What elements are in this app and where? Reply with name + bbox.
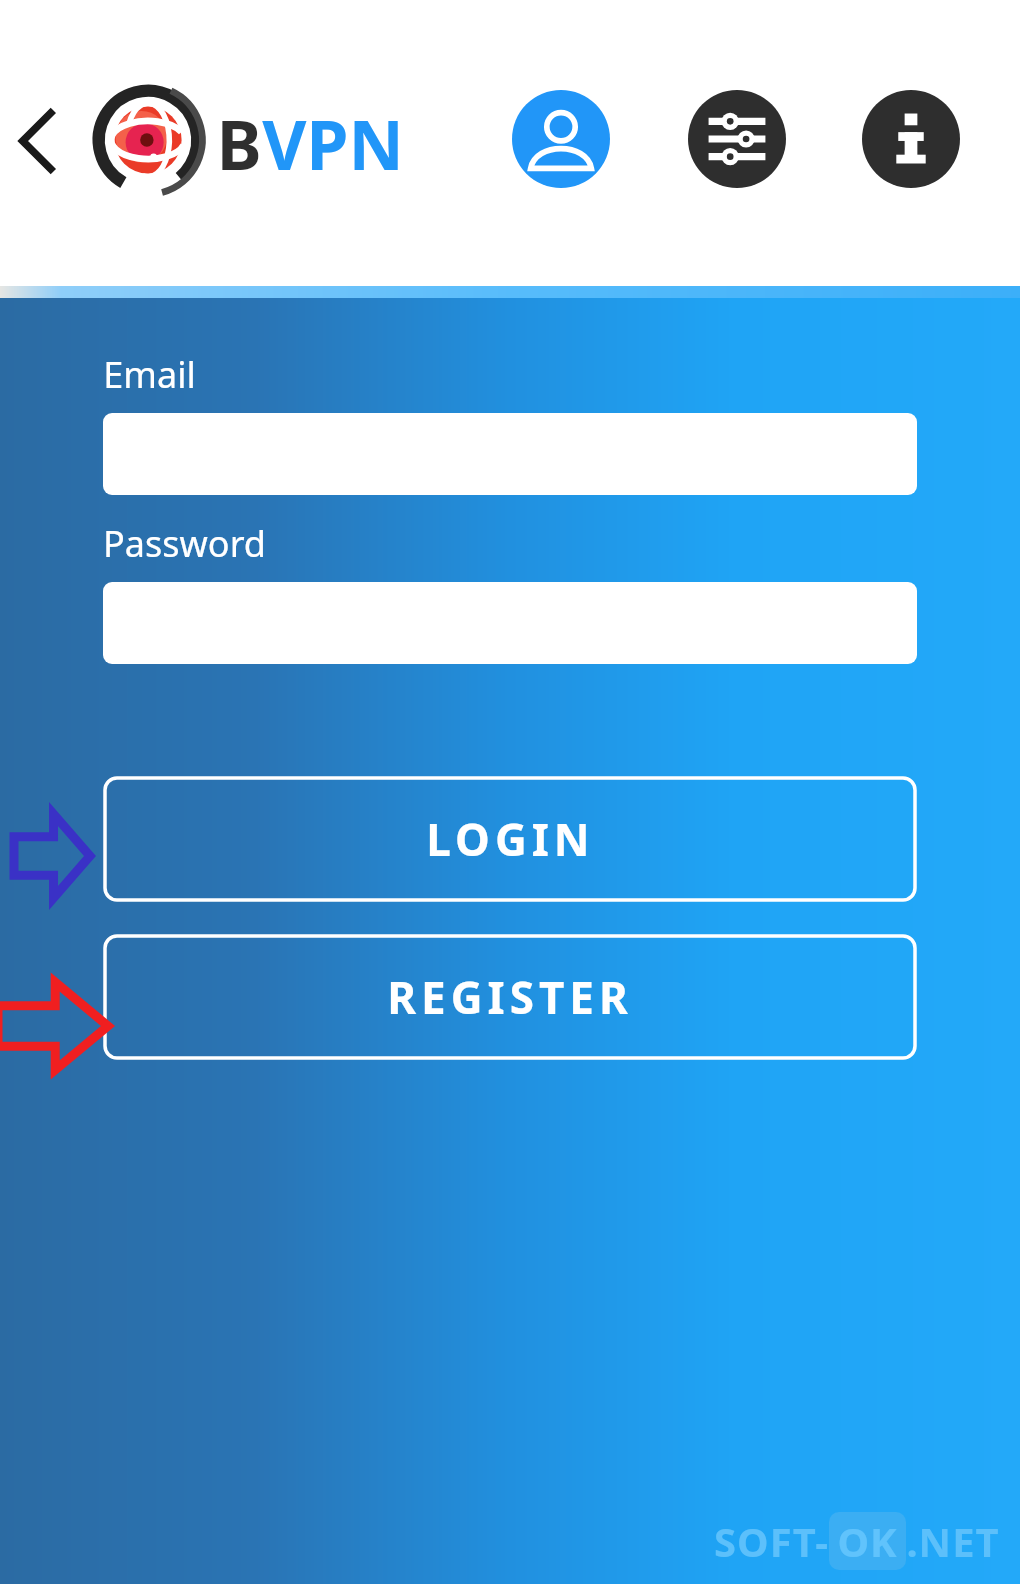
button[interactable]: REGISTER <box>103 934 917 1060</box>
staticText: OK <box>837 1514 898 1568</box>
staticText: .NET <box>906 1514 1000 1568</box>
staticText: Password <box>103 519 266 568</box>
staticText: Email <box>103 350 196 399</box>
button[interactable]: Info <box>862 90 960 188</box>
staticText: REGISTER <box>387 967 633 1027</box>
staticText: SOFT- <box>714 1514 829 1568</box>
button[interactable]: Settings <box>688 90 786 188</box>
button[interactable]: Back <box>6 96 70 186</box>
button[interactable] <box>103 413 917 495</box>
staticText: VPN <box>262 97 404 190</box>
button[interactable] <box>103 582 917 664</box>
button[interactable]: Account <box>512 90 610 188</box>
button[interactable]: LOGIN <box>103 776 917 902</box>
staticText: LOGIN <box>426 809 595 869</box>
staticText: B <box>216 97 262 190</box>
button[interactable]: B <box>216 97 404 190</box>
